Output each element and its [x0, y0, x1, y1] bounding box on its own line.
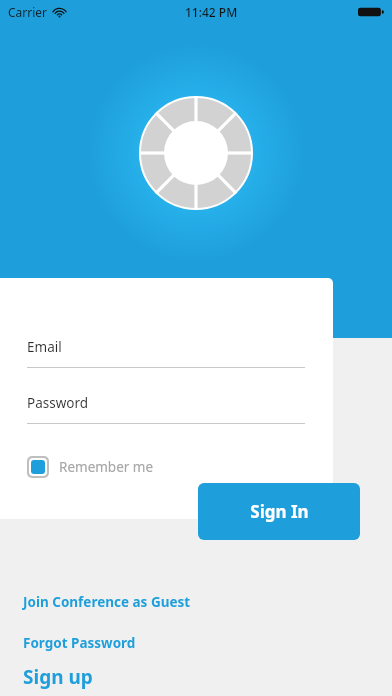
button[interactable]: Password: [27, 394, 305, 424]
staticText: Forgot Password: [23, 634, 136, 652]
staticText: Email: [27, 338, 62, 356]
staticText: Password: [27, 394, 89, 412]
staticText: Sign up: [23, 664, 93, 690]
button[interactable]: Forgot Password: [22, 631, 137, 655]
staticText: Carrier: [8, 4, 48, 20]
staticText: Remember me: [59, 458, 154, 476]
staticText: Sign In: [250, 500, 309, 523]
button[interactable]: Sign In: [198, 483, 360, 540]
staticText: Join Conference as Guest: [23, 593, 191, 611]
staticText: 11:42 PM: [185, 4, 238, 20]
button[interactable]: Remember me: [27, 453, 164, 481]
button[interactable]: Sign up: [22, 661, 94, 693]
button[interactable]: Join Conference as Guest: [22, 590, 192, 614]
button[interactable]: Email: [27, 338, 305, 368]
